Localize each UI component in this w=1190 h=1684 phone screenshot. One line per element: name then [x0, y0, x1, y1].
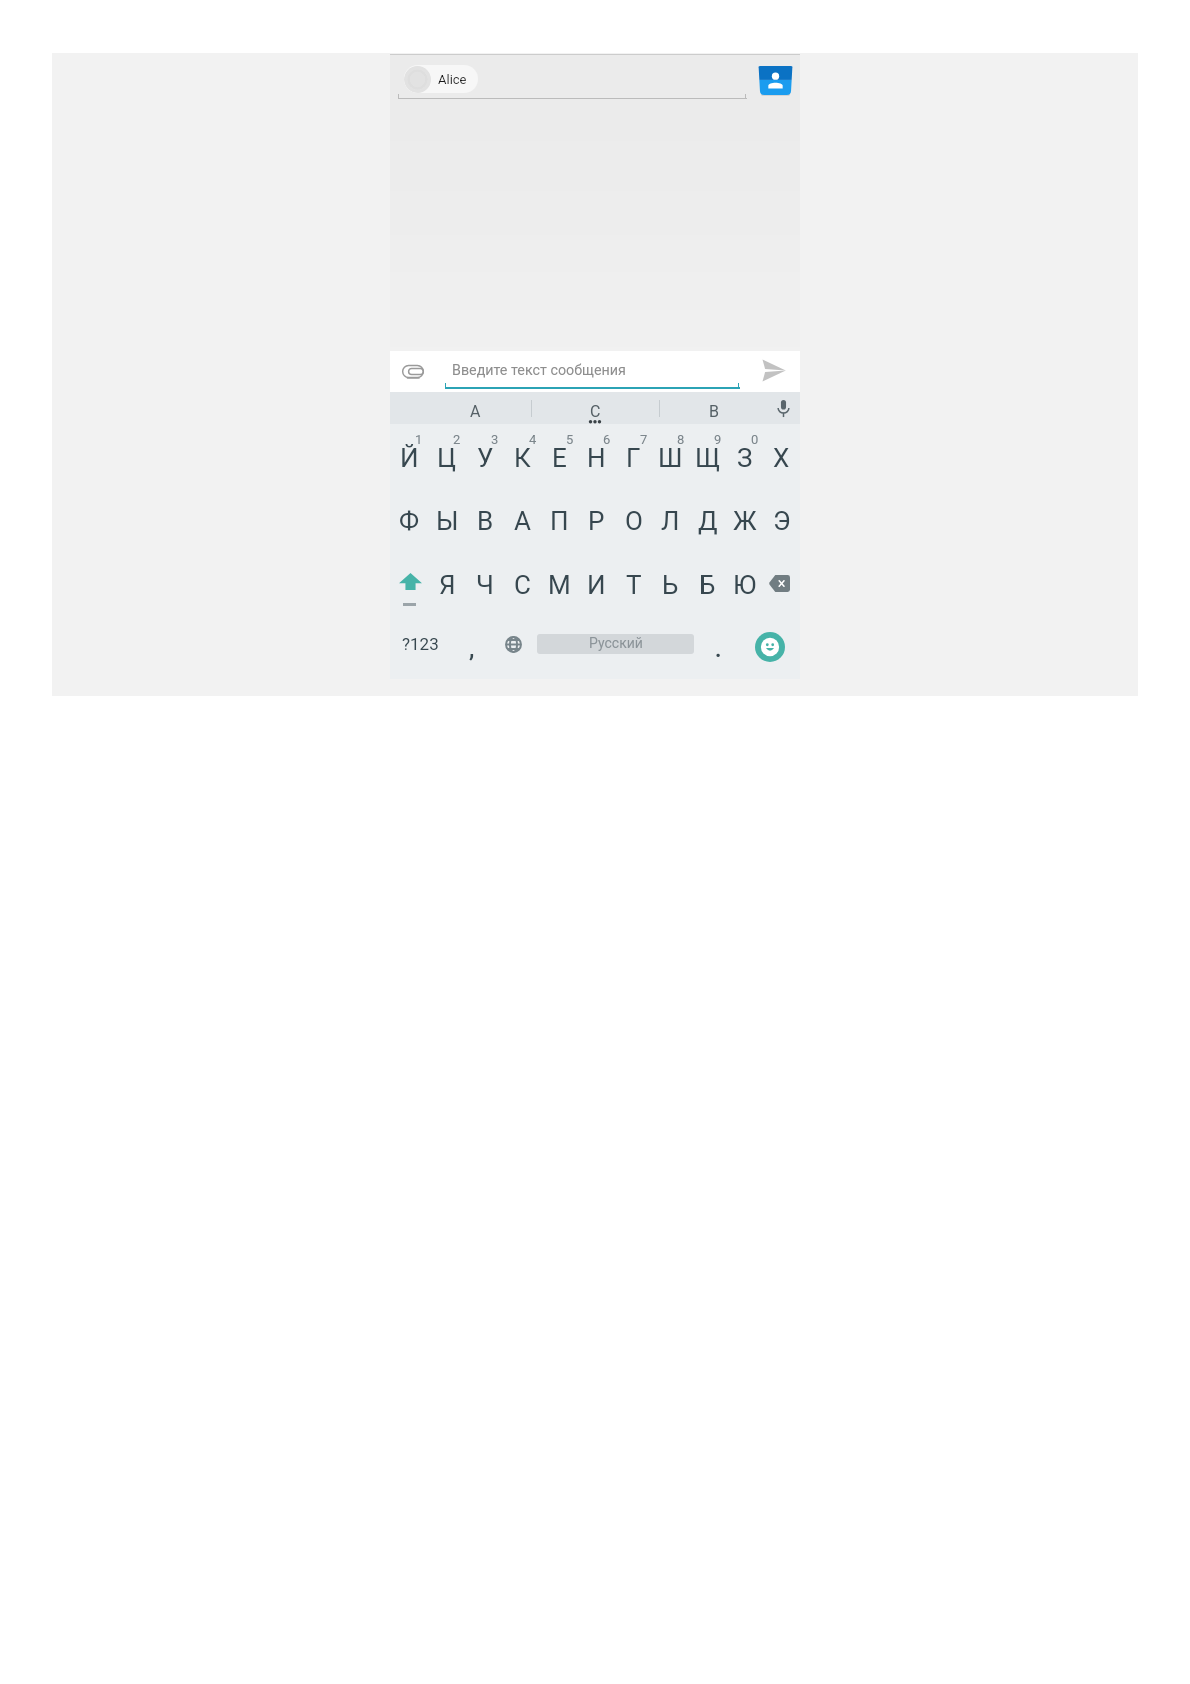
staticText: Ф — [399, 506, 420, 536]
button[interactable]: Ж — [726, 487, 763, 551]
staticText: 3 — [491, 432, 499, 447]
staticText: М — [548, 570, 571, 600]
button[interactable]: Х — [763, 424, 800, 487]
staticText: Д — [698, 506, 718, 536]
staticText: 6 — [603, 432, 611, 447]
button[interactable]: К — [504, 424, 541, 487]
button[interactable]: Ф — [390, 487, 428, 551]
staticText: А — [514, 506, 531, 536]
button[interactable]: Ш — [652, 424, 689, 487]
staticText: Э — [773, 506, 791, 536]
staticText: Е — [552, 443, 567, 473]
staticText: У — [477, 443, 494, 473]
staticText: Ж — [733, 506, 757, 536]
button[interactable]: Send message — [762, 359, 786, 382]
button[interactable]: Ч — [466, 551, 504, 615]
staticText: Русский — [589, 635, 643, 651]
staticText: Ь — [662, 570, 679, 600]
staticText: B — [709, 402, 719, 421]
button[interactable]: . — [699, 615, 737, 679]
button[interactable]: М — [541, 551, 578, 615]
staticText: Щ — [695, 443, 721, 473]
button[interactable]: Русский — [537, 634, 694, 654]
staticText: , — [469, 637, 475, 663]
staticText: Ы — [436, 506, 459, 536]
button[interactable]: Shift — [390, 551, 428, 615]
button[interactable]: Т — [615, 551, 652, 615]
button[interactable]: Б — [689, 551, 726, 615]
button[interactable]: Л — [652, 487, 689, 551]
staticText: Я — [439, 570, 456, 600]
staticText: Л — [661, 506, 680, 536]
staticText: Г — [626, 443, 641, 473]
button[interactable]: Е — [541, 424, 578, 487]
staticText: 7 — [640, 432, 648, 447]
button[interactable]: ?123 — [401, 615, 439, 679]
staticText: 1 — [415, 432, 423, 447]
button[interactable]: З — [726, 424, 763, 487]
staticText: 9 — [714, 432, 722, 447]
button[interactable]: Ю — [726, 551, 763, 615]
button[interactable]: П — [541, 487, 578, 551]
staticText: Т — [626, 570, 642, 600]
button[interactable]: A — [439, 392, 511, 424]
button[interactable]: У — [466, 424, 504, 487]
staticText: З — [737, 443, 753, 473]
staticText: Й — [400, 443, 419, 473]
button[interactable]: Р — [578, 487, 615, 551]
staticText: В — [477, 506, 494, 536]
staticText: С — [514, 570, 531, 600]
button[interactable]: Э — [763, 487, 800, 551]
button[interactable]: Alice — [404, 65, 478, 93]
button[interactable]: C — [559, 392, 631, 424]
staticText: И — [587, 570, 606, 600]
staticText: Введите текст сообщения — [452, 362, 626, 379]
staticText: C — [590, 402, 601, 421]
button[interactable]: Ы — [428, 487, 466, 551]
button[interactable]: Voice input — [766, 392, 800, 424]
staticText: П — [550, 506, 569, 536]
staticText: Ц — [437, 443, 457, 473]
button[interactable]: О — [615, 487, 652, 551]
button[interactable]: Emoji — [751, 615, 789, 679]
button[interactable]: Я — [428, 551, 466, 615]
button[interactable]: B — [678, 392, 750, 424]
button[interactable]: Backspace — [763, 551, 800, 615]
button[interactable]: Щ — [689, 424, 726, 487]
staticText: ?123 — [402, 634, 439, 654]
staticText: 4 — [529, 432, 537, 447]
staticText: 0 — [751, 432, 759, 447]
button[interactable]: Contacts — [758, 66, 793, 95]
staticText: 5 — [566, 432, 574, 447]
button[interactable]: Change language — [494, 615, 532, 679]
staticText: 2 — [453, 432, 461, 447]
button[interactable]: Й — [390, 424, 428, 487]
button[interactable]: С — [504, 551, 541, 615]
button[interactable]: Ь — [652, 551, 689, 615]
button[interactable]: В — [466, 487, 504, 551]
staticText: О — [625, 506, 643, 536]
staticText: К — [514, 443, 531, 473]
button[interactable]: Ц — [428, 424, 466, 487]
button[interactable]: И — [578, 551, 615, 615]
staticText: Ч — [476, 570, 494, 600]
staticText: Н — [587, 443, 606, 473]
button[interactable]: , — [453, 615, 491, 679]
staticText: Р — [588, 506, 605, 536]
staticText: . — [715, 637, 722, 663]
button[interactable]: Attach file — [402, 365, 424, 378]
staticText: Ш — [658, 443, 683, 473]
staticText: A — [470, 402, 481, 421]
button[interactable]: Д — [689, 487, 726, 551]
staticText: 8 — [677, 432, 685, 447]
button[interactable]: Н — [578, 424, 615, 487]
staticText: Х — [773, 443, 790, 473]
button[interactable]: А — [504, 487, 541, 551]
button[interactable]: Г — [615, 424, 652, 487]
staticText: Б — [699, 570, 716, 600]
staticText: Alice — [438, 72, 467, 87]
staticText: Ю — [733, 570, 757, 600]
